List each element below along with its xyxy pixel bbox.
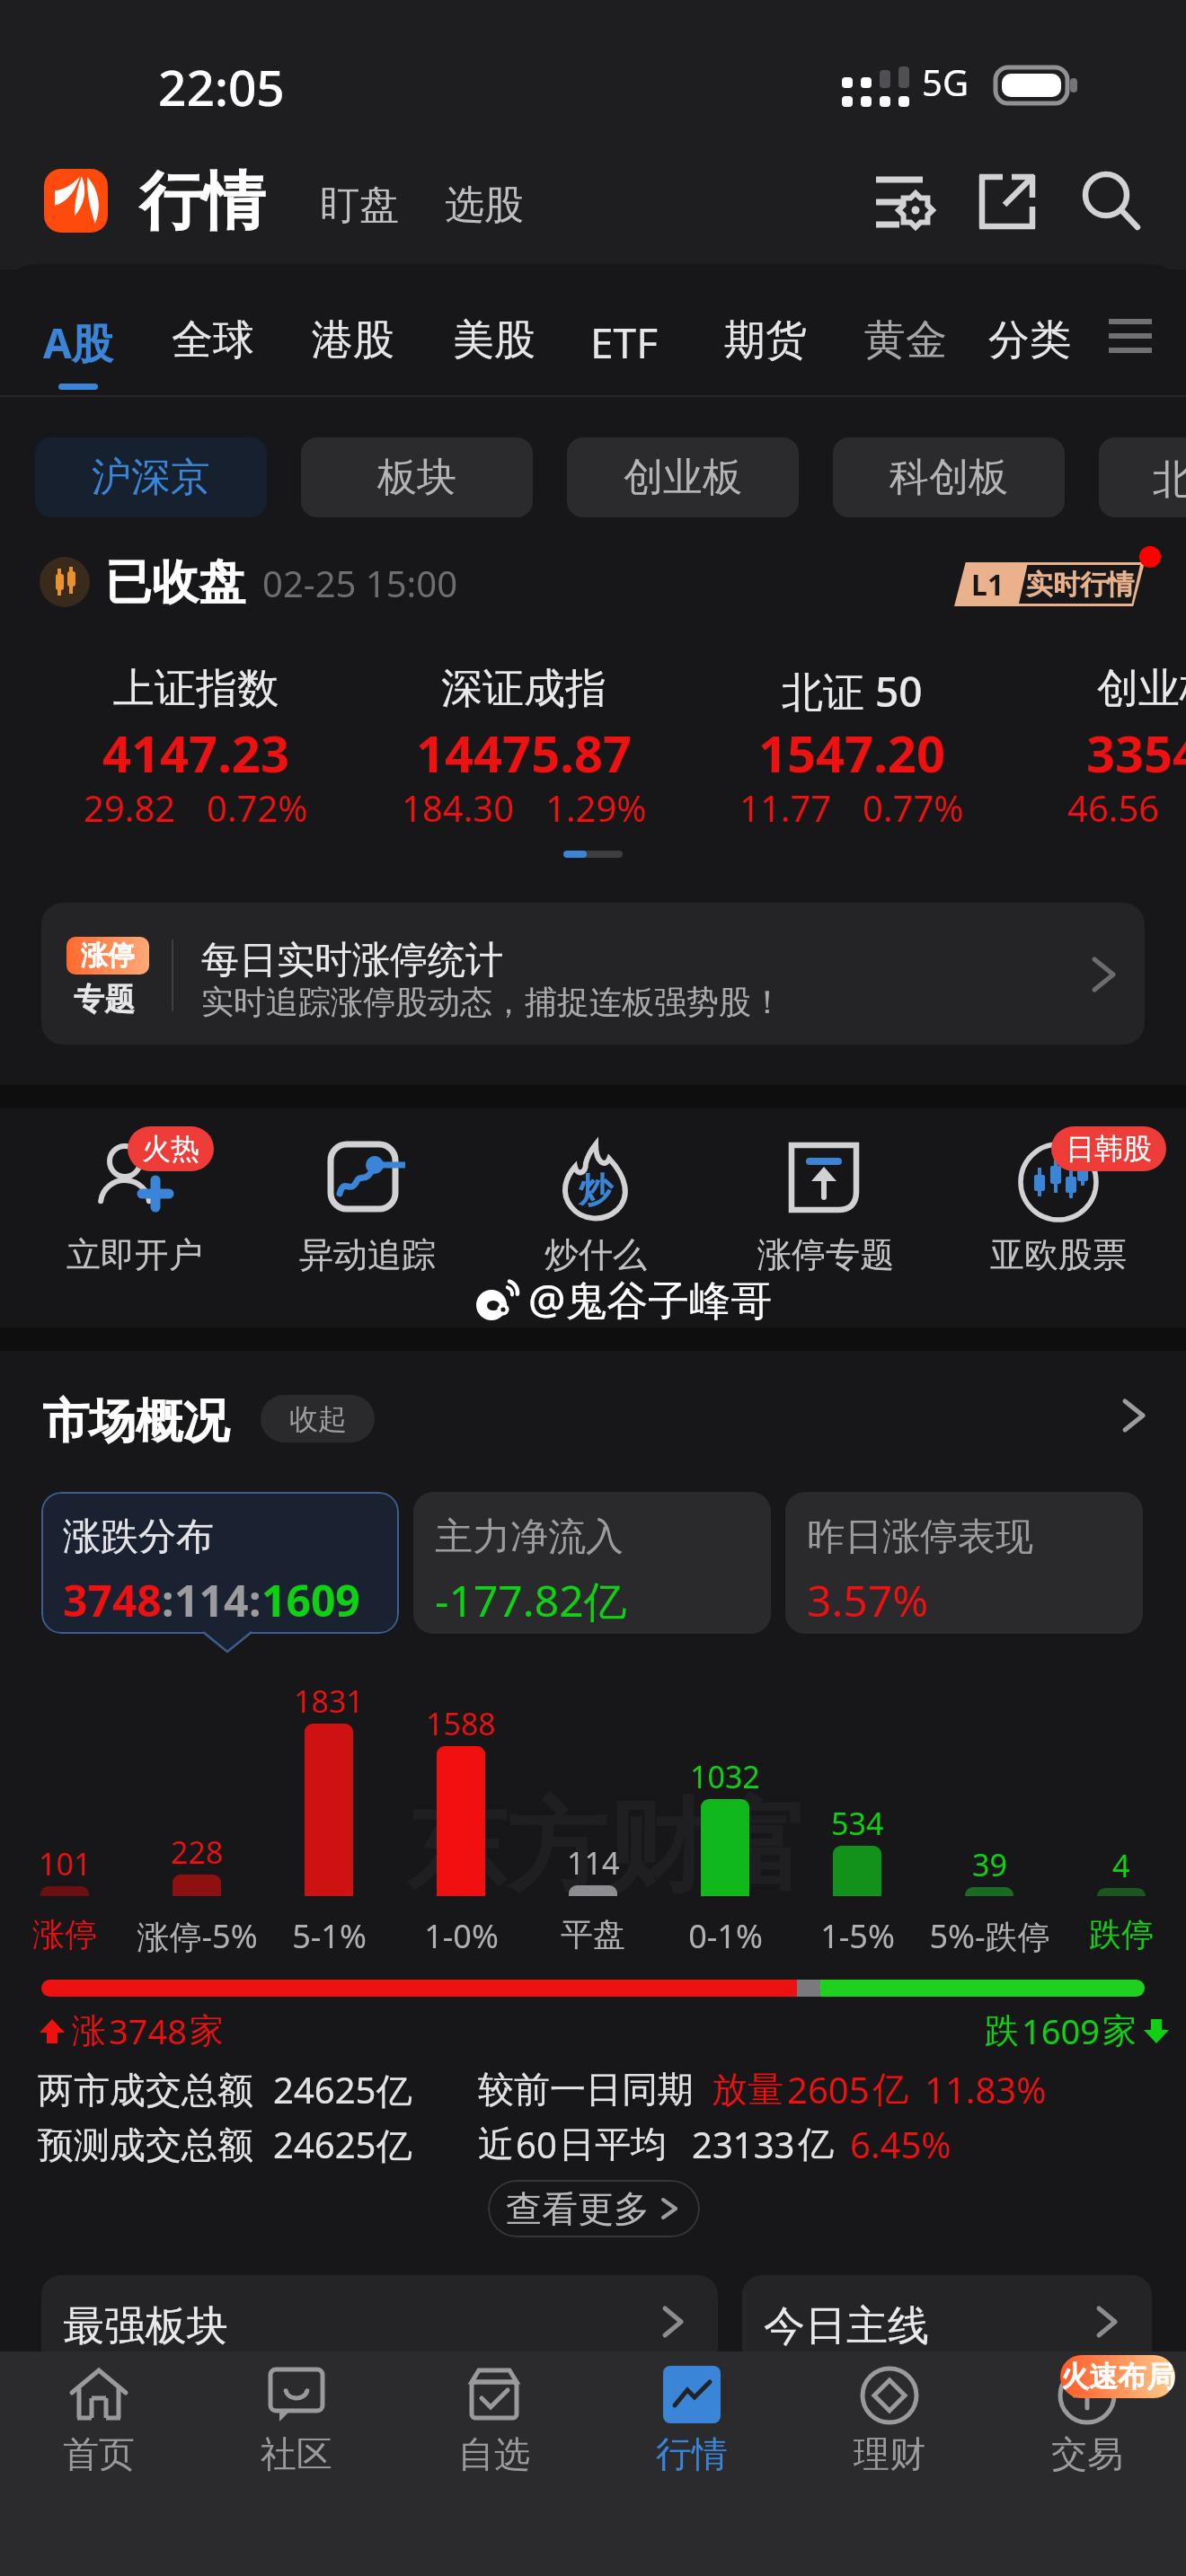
button[interactable]: 期货 [706,278,825,393]
staticText: 1588 [426,1703,496,1744]
button[interactable]: A股 [25,278,131,393]
button[interactable]: 科创板 [833,437,1065,517]
staticText: 02-25 15:00 [262,559,458,607]
button[interactable] [9,2355,189,2481]
staticText: 实时行情 [1026,568,1134,602]
staticText: 社区 [261,2431,332,2476]
staticText: : [162,1571,174,1629]
staticText: 60 [516,2120,557,2168]
button[interactable] [260,1114,475,1320]
staticText: 涨停 [81,939,135,973]
staticText: 家 [190,2009,224,2052]
button[interactable] [404,2355,584,2481]
button[interactable]: List settings [859,161,947,243]
staticText: 1547.20 [758,719,945,787]
button[interactable]: 全球 [154,278,272,393]
button[interactable] [688,656,1015,835]
staticText: 查看更多 [506,2186,650,2231]
button[interactable] [360,656,687,835]
staticText: 3.57% [807,1571,929,1629]
staticText: 港股 [312,314,394,366]
button[interactable]: 昨日涨停表现 [785,1492,1143,1634]
staticText: : [249,1571,261,1629]
button[interactable]: 创业板 [567,437,799,517]
button[interactable]: 黄金 [846,278,965,393]
staticText: 184.30 [402,783,515,832]
button[interactable]: 涨停 [41,903,1145,1045]
button[interactable]: App logo [44,169,108,233]
staticText: 3748 [63,1571,162,1629]
staticText: 东方财富 [406,1784,809,1910]
button[interactable]: ETF [572,278,677,393]
staticText: 24625亿 [273,2120,412,2169]
staticText: 立即开户 [66,1233,203,1276]
button[interactable]: 最强板块 [41,2275,718,2392]
button[interactable]: Search [1067,161,1155,243]
button[interactable]: Expand market overview [1107,1389,1161,1442]
staticText: 创业板指 [1097,663,1186,715]
staticText: 近 [478,2122,514,2166]
button[interactable] [1016,656,1186,835]
staticText: 14475.87 [416,719,632,787]
staticText: L1 [971,565,1005,604]
button[interactable]: 查看更多 [488,2180,700,2237]
staticText: 上证指数 [113,663,279,715]
staticText: 火热 [142,1131,199,1167]
button[interactable]: 收起 [261,1395,375,1442]
staticText: 亿 [798,2122,834,2166]
button[interactable]: 主力净流入 [413,1492,771,1634]
button[interactable]: More categories [1098,304,1163,368]
button[interactable]: 美股 [435,278,553,393]
staticText: 涨跌分布 [63,1513,214,1561]
staticText: 专题 [74,980,135,1019]
button[interactable]: 盯盘 [304,169,415,241]
staticText: 盯盘 [320,181,399,230]
button[interactable]: 沪深京 [35,437,267,517]
button[interactable] [27,1114,243,1320]
staticText: 亚欧股票 [990,1233,1127,1276]
staticText: 收起 [289,1401,347,1437]
button[interactable]: Open external [963,161,1051,243]
button[interactable]: 分类 [970,278,1089,393]
button[interactable]: 今日主线 [742,2275,1152,2392]
staticText: 自选 [458,2431,530,2476]
staticText: 6.45% [850,2120,951,2168]
staticText: 全球 [172,314,254,366]
staticText: 5G [922,57,969,106]
staticText: 两市成交总额 [38,2068,253,2113]
button[interactable]: L1 realtime quotes [954,562,1145,606]
staticText: 昨日涨停表现 [807,1513,1033,1561]
staticText: 已收盘 [105,553,245,613]
button[interactable]: 港股 [294,278,412,393]
staticText: 实时追踪涨停股动态，捕捉连板强势股！ [201,982,783,1022]
staticText: 亿 [872,2067,908,2112]
button[interactable] [951,1114,1166,1320]
staticText: 放量 [712,2067,783,2112]
button[interactable]: 选股 [429,169,540,241]
staticText: 46.56 [1067,783,1160,832]
staticText: 11.77 [739,783,832,832]
button[interactable] [997,2355,1177,2481]
button[interactable] [718,1114,934,1320]
staticText: 跌停 [1089,1914,1154,1954]
staticText: 北证50 [1153,451,1186,505]
button[interactable]: 涨跌分布 [41,1492,399,1634]
staticText: 美股 [453,314,535,366]
staticText: 2605 [787,2065,870,2113]
staticText: 1-0% [424,1914,499,1958]
button[interactable] [800,2355,979,2481]
button[interactable] [207,2355,386,2481]
button[interactable] [488,1114,704,1320]
staticText: 534 [831,1803,884,1844]
button[interactable]: 北证50 [1099,437,1186,517]
staticText: 22:05 [158,53,285,120]
staticText: 沪深京 [92,453,210,502]
staticText: 创业板 [624,453,742,502]
button[interactable]: 板块 [301,437,533,517]
staticText: 涨停专题 [757,1233,894,1276]
button[interactable] [602,2355,782,2481]
staticText: 0-1% [688,1914,763,1958]
staticText: 5%-跌停 [929,1914,1050,1958]
staticText: 每日实时涨停统计 [201,937,503,984]
button[interactable] [32,656,359,835]
